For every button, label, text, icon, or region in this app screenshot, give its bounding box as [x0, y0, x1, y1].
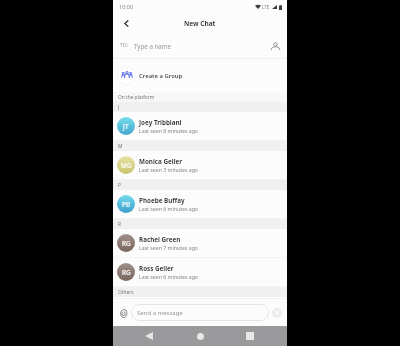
staticText: J [118, 104, 120, 111]
staticText: Last seen 8 minutes ago [139, 127, 199, 134]
staticText: LTE [262, 4, 270, 10]
staticText: 10:00 [119, 3, 134, 10]
button[interactable]: Attach [117, 307, 129, 319]
staticText: Phoebe Buffay [139, 196, 185, 205]
staticText: Create a Group [139, 72, 183, 80]
button[interactable]: Recents [244, 330, 256, 342]
staticText: MG [121, 161, 132, 170]
button[interactable]: RG [113, 258, 287, 286]
button[interactable]: Create a Group [113, 59, 287, 92]
staticText: Last seen 7 minutes ago [139, 244, 199, 251]
staticText: Monica Geller [139, 157, 183, 166]
button[interactable]: RG [113, 229, 287, 257]
staticText: New Chat [184, 19, 216, 28]
button[interactable]: Home [194, 330, 206, 342]
staticText: RG [122, 239, 131, 248]
staticText: Rachel Green [139, 235, 181, 244]
staticText: P [118, 182, 121, 189]
staticText: On the platform [118, 94, 155, 101]
staticText: JT [123, 122, 129, 131]
staticText: Last seen 3 minutes ago [139, 166, 199, 173]
button[interactable]: Send [272, 308, 282, 318]
staticText: M [118, 143, 123, 150]
staticText: Ross Geller [139, 264, 174, 273]
staticText: Last seen 6 minutes ago [139, 273, 199, 280]
button[interactable]: Add contact [269, 40, 281, 52]
staticText: Send a message [137, 309, 183, 317]
staticText: R [118, 221, 121, 228]
staticText: Type a name [134, 42, 172, 50]
staticText: TO: [120, 42, 128, 49]
button[interactable]: Back [143, 330, 155, 342]
button[interactable]: JT [113, 112, 287, 140]
staticText: Last seen 6 minutes ago [139, 205, 199, 212]
button[interactable]: MG [113, 151, 287, 179]
button[interactable]: Send a message [131, 304, 269, 321]
staticText: RG [122, 268, 131, 277]
button[interactable]: PB [113, 190, 287, 218]
button[interactable]: Back [120, 17, 132, 29]
staticText: Others [118, 289, 134, 296]
staticText: PB [122, 200, 131, 209]
staticText: Joey Tribbiani [139, 118, 182, 127]
